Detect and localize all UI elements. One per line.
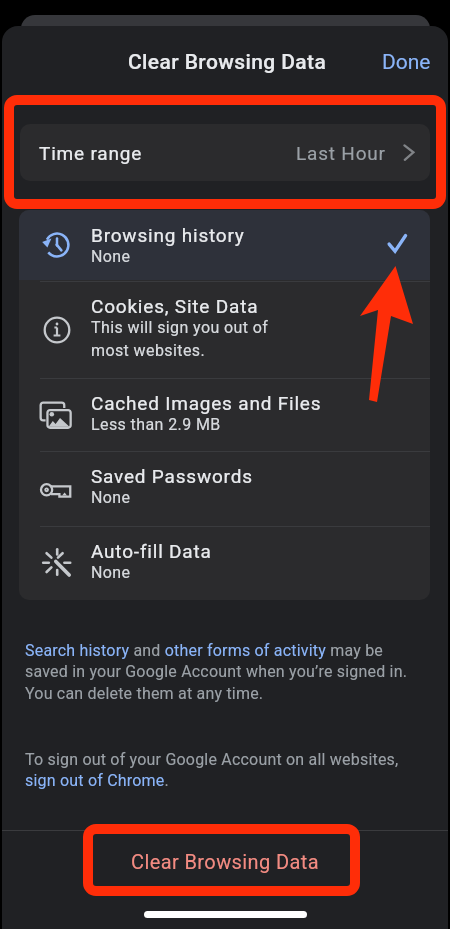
staticText: Saved Passwords <box>91 465 253 487</box>
staticText: To sign out of your Google Account on al… <box>25 750 421 790</box>
staticText: None <box>91 488 131 507</box>
button[interactable]: Clear Browsing Data <box>120 42 335 83</box>
button[interactable]: Cached Images and Files <box>19 378 430 451</box>
button[interactable]: Cookies, Site Data <box>19 281 430 378</box>
staticText: Done <box>382 50 431 75</box>
button[interactable]: Browsing history <box>19 210 430 281</box>
staticText: Browsing history <box>91 224 245 246</box>
staticText: Last Hour <box>296 142 386 164</box>
other: Selected <box>388 234 410 256</box>
button[interactable]: Saved Passwords <box>19 451 430 526</box>
staticText: Time range <box>39 142 143 164</box>
staticText: Search history and other forms of activi… <box>25 641 421 703</box>
button[interactable]: Auto-fill Data <box>19 526 430 600</box>
staticText: Clear Browsing Data <box>131 850 320 873</box>
staticText: This will sign you out of most websites. <box>91 318 269 360</box>
button[interactable]: Done <box>370 41 443 84</box>
staticText: Auto-fill Data <box>91 540 212 562</box>
button[interactable]: Time range <box>20 124 430 181</box>
staticText: Cookies, Site Data <box>91 295 259 317</box>
staticText: None <box>91 247 131 266</box>
staticText: Cached Images and Files <box>91 392 322 414</box>
staticText: Less than 2.9 MB <box>91 415 221 434</box>
staticText: Clear Browsing Data <box>128 50 327 75</box>
button[interactable]: Clear Browsing Data <box>2 831 448 891</box>
staticText: None <box>91 563 131 582</box>
